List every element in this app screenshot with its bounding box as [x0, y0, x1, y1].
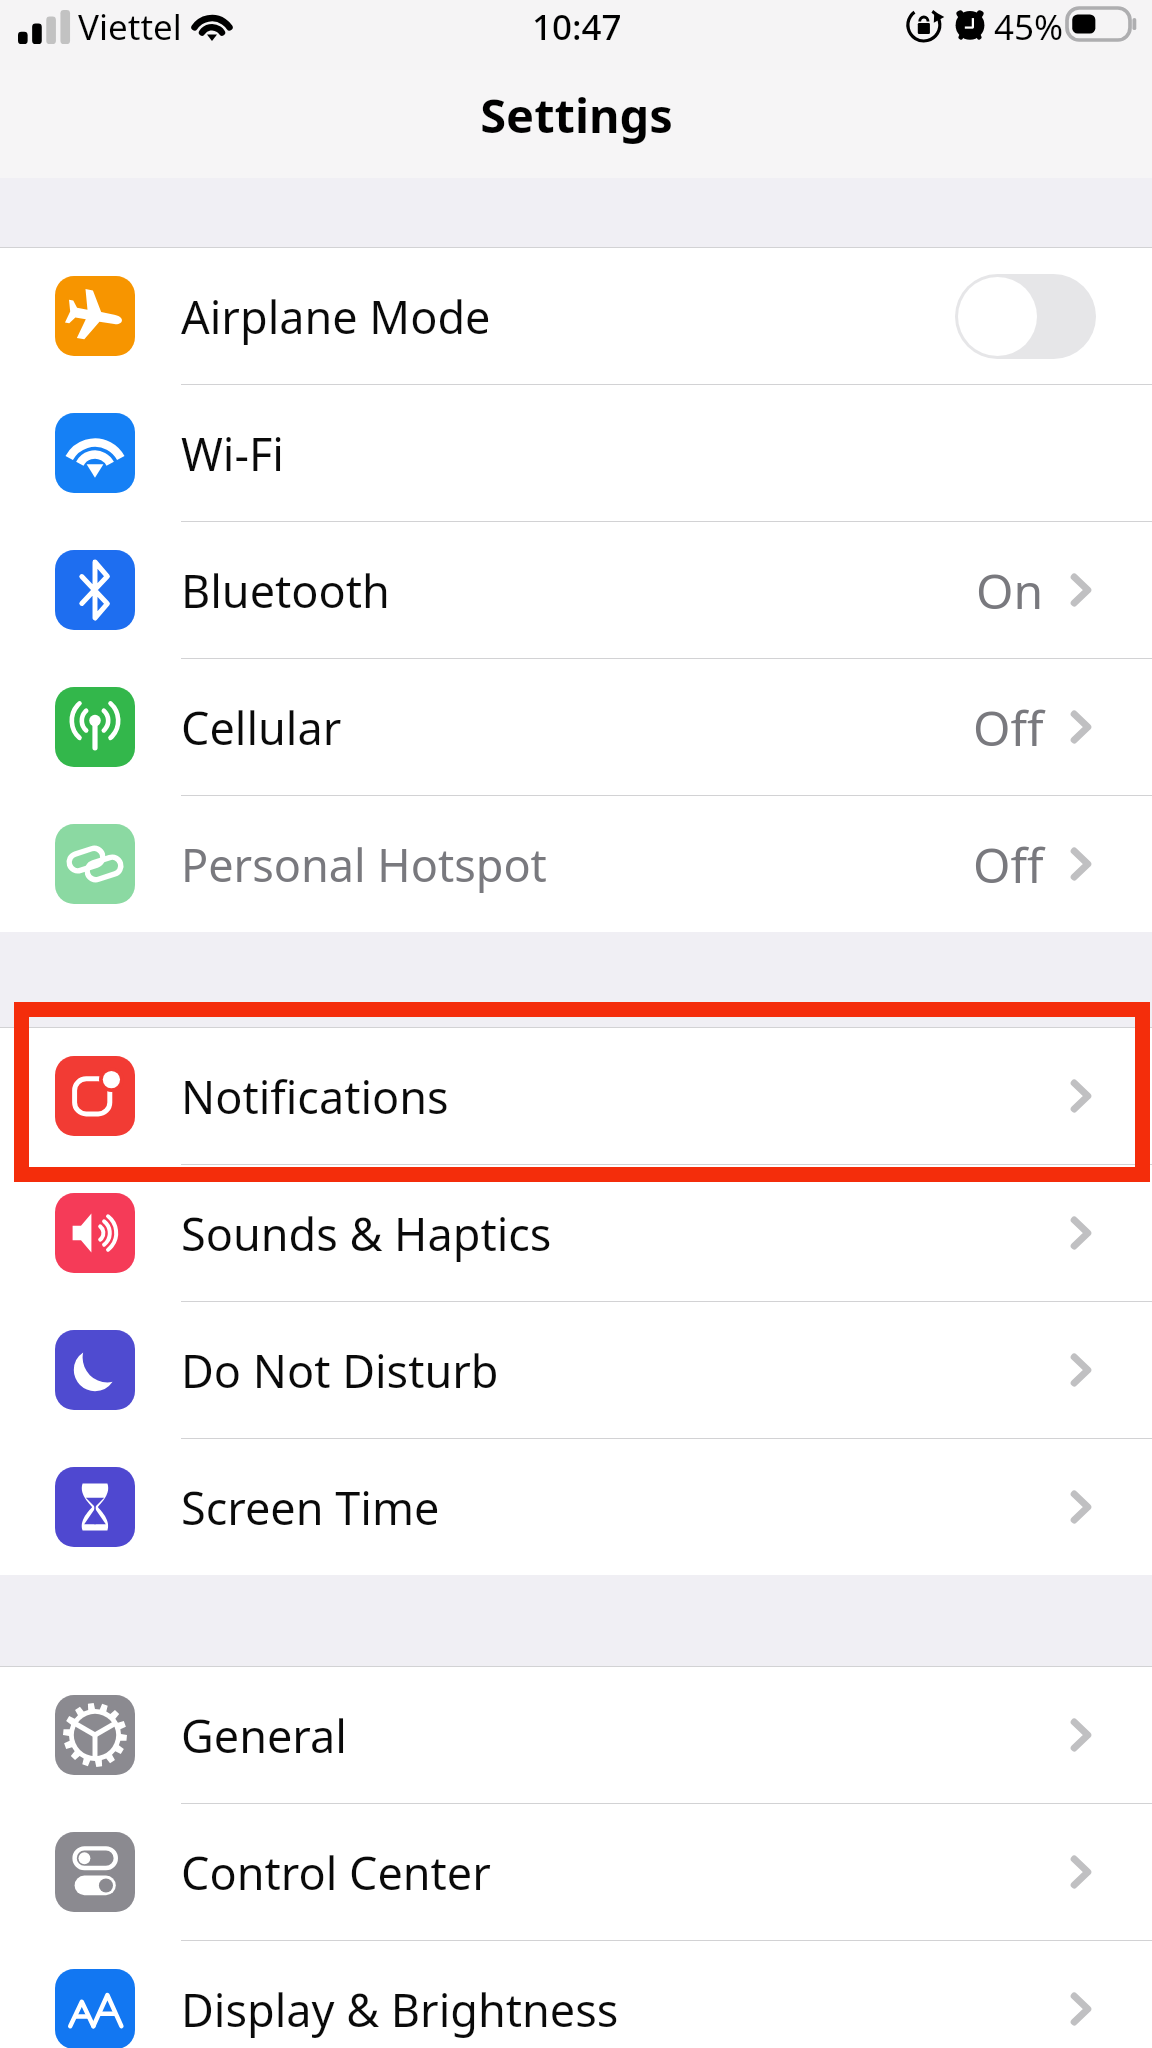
- button[interactable]: Sounds & Haptics: [0, 1165, 1152, 1302]
- staticText: 10:47: [532, 3, 622, 51]
- staticText: Personal Hotspot: [181, 834, 547, 895]
- staticText: Viettel: [78, 3, 182, 51]
- staticText: Control Center: [181, 1842, 491, 1903]
- button[interactable]: Display & Brightness: [0, 1941, 1152, 2048]
- other: More: [1071, 1079, 1091, 1113]
- other: More: [1071, 1216, 1091, 1250]
- other: More: [1071, 1855, 1091, 1889]
- other: Alarm: [952, 4, 988, 42]
- staticText: On: [976, 558, 1044, 623]
- button[interactable]: Notifications: [0, 1028, 1152, 1165]
- button[interactable]: Wi-Fi: [0, 385, 1152, 522]
- other: More: [1071, 1992, 1091, 2026]
- staticText: Screen Time: [181, 1477, 440, 1538]
- button[interactable]: Cellular: [0, 659, 1152, 796]
- staticText: Display & Brightness: [181, 1979, 619, 2040]
- staticText: Off: [973, 695, 1044, 760]
- staticText: 45%: [994, 3, 1064, 51]
- staticText: Wi-Fi: [181, 423, 284, 484]
- button[interactable]: Control Center: [0, 1804, 1152, 1941]
- other: Rotation lock: [906, 6, 944, 44]
- button[interactable]: Airplane Mode: [0, 248, 1152, 385]
- staticText: Cellular: [181, 697, 342, 758]
- button[interactable]: Personal Hotspot: [0, 796, 1152, 932]
- other: More: [1071, 1718, 1091, 1752]
- other: More: [1071, 1353, 1091, 1387]
- other: More: [1071, 710, 1091, 744]
- staticText: Airplane Mode: [181, 286, 491, 347]
- staticText: Off: [973, 832, 1044, 897]
- other: More: [1071, 847, 1091, 881]
- other: More: [1071, 573, 1091, 607]
- other: More: [1071, 1490, 1091, 1524]
- button[interactable]: Screen Time: [0, 1439, 1152, 1575]
- staticText: Sounds & Haptics: [181, 1203, 552, 1264]
- staticText: Notifications: [181, 1066, 449, 1127]
- staticText: Bluetooth: [181, 560, 390, 621]
- button[interactable]: Airplane Mode toggle: [955, 274, 1096, 359]
- staticText: General: [181, 1705, 347, 1766]
- button[interactable]: General: [0, 1667, 1152, 1804]
- staticText: Do Not Disturb: [181, 1340, 499, 1401]
- button[interactable]: Bluetooth: [0, 522, 1152, 659]
- button[interactable]: Do Not Disturb: [0, 1302, 1152, 1439]
- staticText: Settings: [480, 83, 673, 147]
